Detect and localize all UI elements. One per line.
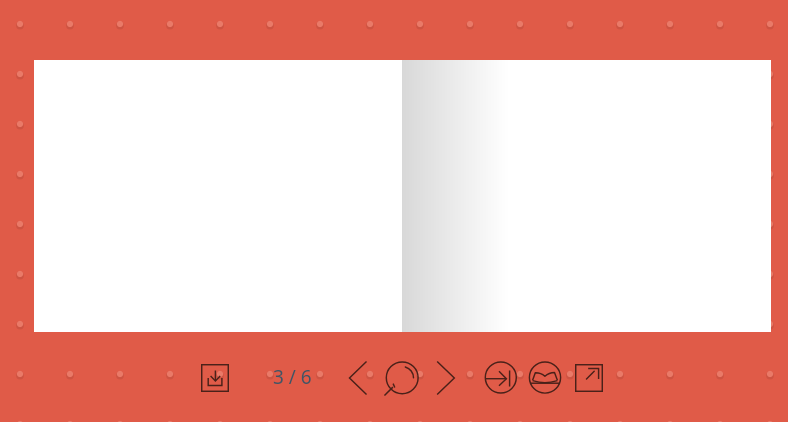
- button[interactable]: Zoom: [384, 359, 422, 397]
- button[interactable]: Book view: [528, 361, 562, 395]
- button[interactable]: 3 / 6: [269, 362, 315, 392]
- button[interactable]: Previous page: [344, 358, 376, 398]
- button[interactable]: Next page: [432, 358, 464, 398]
- button[interactable]: Last page: [484, 361, 518, 395]
- button[interactable]: Download: [201, 364, 229, 392]
- button[interactable]: Open in new: [575, 364, 603, 392]
- staticText: 3 / 6: [273, 364, 312, 390]
